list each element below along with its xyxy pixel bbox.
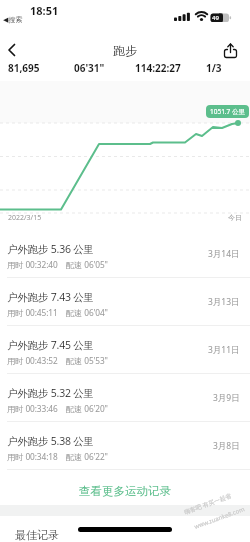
button[interactable]: 户外跑步 5.38 公里 bbox=[0, 422, 250, 470]
staticText: 户外跑步 5.38 公里 bbox=[7, 434, 94, 448]
staticText: 49 bbox=[212, 14, 219, 22]
staticText: 用时 00:32:40 配速 06'05" bbox=[7, 259, 108, 270]
staticText: 跑步 bbox=[113, 43, 137, 58]
staticText: 用时 00:43:52 配速 05'53" bbox=[7, 355, 108, 366]
button[interactable] bbox=[220, 40, 242, 60]
staticText: 1051.7 公里 bbox=[210, 107, 246, 116]
button[interactable]: 户外跑步 7.45 公里 bbox=[0, 326, 250, 374]
staticText: 1/3 bbox=[206, 61, 222, 75]
staticText: 81,695 bbox=[8, 61, 40, 75]
staticText: 最佳记录 bbox=[15, 528, 59, 542]
staticText: 户外跑步 7.43 公里 bbox=[7, 290, 94, 304]
staticText: 18:51 bbox=[30, 3, 59, 18]
staticText: 3月14日 bbox=[208, 248, 240, 260]
button[interactable] bbox=[2, 40, 24, 60]
staticText: 用时 00:45:11 配速 06'04" bbox=[7, 307, 108, 318]
button[interactable]: 户外跑步 5.32 公里 bbox=[0, 374, 250, 422]
staticText: 户外跑步 7.45 公里 bbox=[7, 338, 94, 352]
staticText: 户外跑步 5.32 公里 bbox=[7, 386, 94, 400]
button[interactable]: 户外跑步 7.43 公里 bbox=[0, 278, 250, 326]
staticText: 114:22:27 bbox=[135, 61, 181, 75]
staticText: 今日 bbox=[228, 213, 242, 222]
button[interactable]: 查看更多运动记录 bbox=[0, 480, 250, 502]
staticText: 查看更多运动记录 bbox=[79, 484, 171, 498]
staticText: 用时 00:34:18 配速 06'22" bbox=[7, 451, 108, 462]
staticText: www.zuanke8.com bbox=[193, 505, 246, 531]
staticText: 2022/3/15 bbox=[8, 213, 42, 223]
staticText: 3月9日 bbox=[213, 392, 240, 404]
staticText: 户外跑步 5.36 公里 bbox=[7, 242, 94, 256]
staticText: ◀搜索 bbox=[3, 15, 23, 24]
staticText: 3月11日 bbox=[208, 344, 240, 356]
button[interactable]: 户外跑步 5.36 公里 bbox=[0, 230, 250, 278]
staticText: 嗨客吧 有买一起省 bbox=[183, 492, 233, 516]
staticText: 3月13日 bbox=[208, 296, 240, 308]
staticText: 用时 00:33:46 配速 06'20" bbox=[7, 403, 108, 414]
staticText: 3月8日 bbox=[213, 440, 240, 452]
staticText: 06'31" bbox=[74, 61, 105, 75]
